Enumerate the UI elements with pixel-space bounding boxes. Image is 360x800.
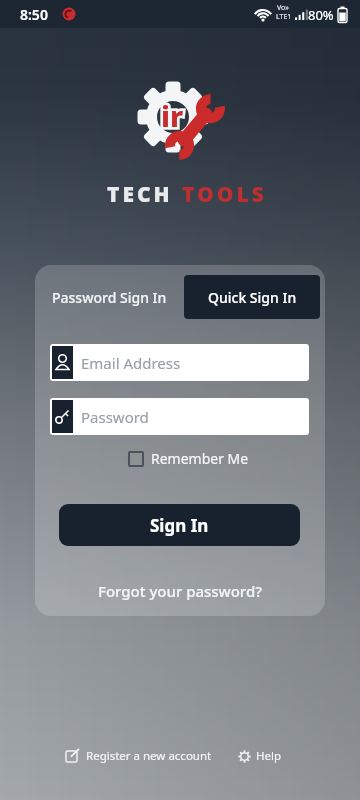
staticText: Forgot your password? — [98, 581, 262, 601]
staticText: TECH — [107, 180, 182, 209]
staticText: Quick Sign In — [208, 288, 297, 307]
button[interactable]: Help — [238, 748, 282, 764]
staticText: Register a new account — [86, 748, 212, 764]
staticText: Password Sign In — [52, 288, 167, 307]
staticText: LTE1 — [276, 12, 292, 22]
staticText: 80% — [308, 6, 334, 24]
button[interactable]: Email Address — [50, 344, 309, 381]
staticText: Help — [256, 748, 282, 764]
button[interactable]: Register a new account — [66, 748, 212, 764]
staticText: Vo» — [277, 3, 289, 13]
staticText: Email Address — [81, 353, 181, 373]
staticText: Sign In — [150, 514, 209, 537]
staticText: 8:50 — [20, 5, 48, 24]
button[interactable]: Remember Me — [128, 449, 249, 468]
button[interactable]: Sign In — [59, 504, 300, 546]
staticText: Remember Me — [151, 449, 249, 468]
button[interactable]: Password — [50, 398, 309, 435]
staticText: Password — [81, 407, 149, 427]
button[interactable]: Password Sign In — [35, 275, 184, 319]
staticText: ir — [161, 96, 184, 135]
button[interactable]: Quick Sign In — [184, 275, 320, 319]
staticText: TOOLS — [182, 180, 267, 209]
button[interactable]: Forgot your password? — [35, 581, 325, 601]
staticText: ir — [161, 96, 184, 135]
